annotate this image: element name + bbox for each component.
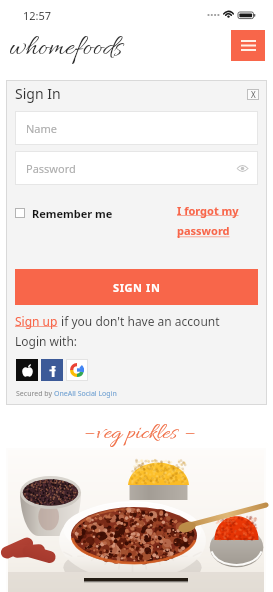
staticText: whomefoods <box>9 31 123 67</box>
staticText: if you don't have an account <box>58 313 220 329</box>
button[interactable]: I forgot my password <box>177 203 262 239</box>
staticText: 12:57 <box>23 8 52 23</box>
button[interactable]: Name <box>15 111 258 145</box>
button[interactable]: Remember me <box>15 205 135 221</box>
button[interactable]: Open navigation menu <box>231 30 265 61</box>
button[interactable]: Sign in with Facebook <box>41 359 63 381</box>
staticText: Name <box>26 121 58 136</box>
staticText: Secured by <box>16 389 54 399</box>
staticText: Sign In <box>15 84 61 103</box>
button[interactable]: Sign up <box>15 313 58 329</box>
button[interactable]: Close sign in dialog <box>247 89 259 100</box>
staticText: SIGN IN <box>113 280 161 295</box>
button[interactable]: Sign in with Apple <box>16 359 38 381</box>
button[interactable]: Sign in with Google <box>66 359 88 381</box>
staticText: Login with: <box>15 333 78 349</box>
button[interactable]: Password <box>15 151 258 185</box>
staticText: X <box>251 89 256 100</box>
button[interactable]: SIGN IN <box>15 269 258 305</box>
staticText: OneAll Social Login <box>54 389 117 399</box>
staticText: – veg pickles – <box>82 419 192 449</box>
staticText: Remember me <box>32 206 113 221</box>
staticText: Password <box>26 161 76 176</box>
staticText: I forgot my password <box>177 203 262 239</box>
